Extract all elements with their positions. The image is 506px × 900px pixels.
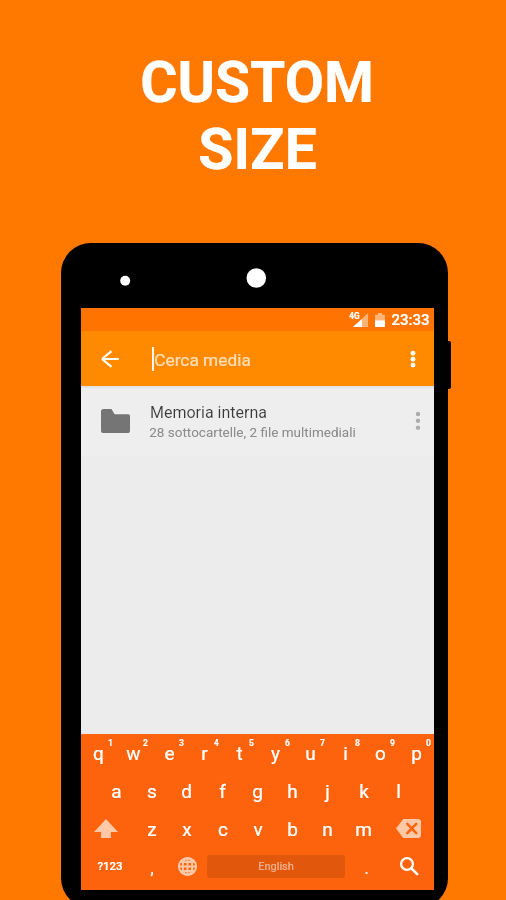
- button[interactable]: 0: [399, 734, 434, 774]
- staticText: c: [218, 818, 228, 840]
- staticText: d: [181, 780, 192, 802]
- button[interactable]: Change language: [169, 850, 204, 890]
- button[interactable]: Backspace: [381, 812, 434, 850]
- staticText: 5: [249, 738, 254, 748]
- staticText: l: [396, 780, 401, 802]
- staticText: 6: [285, 738, 290, 748]
- button[interactable]: g: [240, 774, 275, 812]
- button[interactable]: z: [134, 812, 169, 850]
- staticText: n: [322, 818, 333, 840]
- button[interactable]: 3: [152, 734, 187, 774]
- staticText: g: [252, 780, 263, 802]
- button[interactable]: d: [169, 774, 204, 812]
- button[interactable]: Shift: [81, 812, 134, 850]
- staticText: 0: [426, 738, 431, 748]
- staticText: 8: [355, 738, 360, 748]
- button[interactable]: b: [275, 812, 310, 850]
- button[interactable]: x: [169, 812, 204, 850]
- staticText: z: [147, 818, 157, 840]
- staticText: r: [201, 742, 208, 764]
- button[interactable]: 9: [363, 734, 398, 774]
- staticText: p: [411, 742, 422, 764]
- staticText: w: [126, 742, 141, 764]
- staticText: SIZE: [198, 116, 317, 183]
- button[interactable]: English: [207, 855, 345, 878]
- button[interactable]: m: [346, 812, 381, 850]
- staticText: Memoria interna: [150, 403, 267, 422]
- staticText: 3: [179, 738, 184, 748]
- button[interactable]: Memoria interna: [81, 386, 434, 456]
- staticText: 2: [143, 738, 148, 748]
- button[interactable]: 1: [81, 734, 116, 774]
- button[interactable]: v: [240, 812, 275, 850]
- button[interactable]: h: [275, 774, 310, 812]
- staticText: u: [305, 742, 316, 764]
- staticText: x: [182, 818, 192, 840]
- staticText: f: [219, 780, 226, 802]
- staticText: 23:33: [391, 311, 430, 329]
- button[interactable]: 5: [222, 734, 257, 774]
- button[interactable]: .: [347, 850, 382, 890]
- staticText: s: [147, 780, 157, 802]
- staticText: 1: [108, 738, 113, 748]
- staticText: v: [253, 818, 263, 840]
- button[interactable]: c: [205, 812, 240, 850]
- staticText: q: [93, 742, 104, 764]
- staticText: 9: [390, 738, 395, 748]
- button[interactable]: ,: [134, 850, 169, 890]
- button[interactable]: 8: [328, 734, 363, 774]
- staticText: CUSTOM: [140, 49, 374, 116]
- staticText: y: [271, 742, 280, 764]
- staticText: b: [287, 818, 298, 840]
- staticText: k: [359, 780, 369, 802]
- staticText: a: [111, 780, 122, 802]
- staticText: 4G: [349, 311, 360, 321]
- button[interactable]: Item options: [400, 403, 436, 439]
- button[interactable]: j: [310, 774, 345, 812]
- staticText: 7: [320, 738, 325, 748]
- button[interactable]: 2: [116, 734, 151, 774]
- button[interactable]: Back: [91, 340, 129, 378]
- staticText: i: [343, 742, 348, 764]
- staticText: m: [355, 818, 372, 840]
- staticText: ?123: [97, 859, 123, 872]
- staticText: t: [236, 742, 243, 764]
- staticText: English: [258, 860, 294, 873]
- staticText: o: [375, 742, 386, 764]
- button[interactable]: 7: [293, 734, 328, 774]
- staticText: e: [164, 742, 175, 764]
- staticText: 4: [214, 738, 219, 748]
- button[interactable]: a: [99, 774, 134, 812]
- staticText: h: [287, 780, 298, 802]
- button[interactable]: ?123: [81, 850, 134, 890]
- staticText: 28 sottocartelle, 2 file multimediali: [149, 424, 356, 440]
- staticText: Cerca media: [154, 350, 251, 370]
- button[interactable]: l: [381, 774, 416, 812]
- button[interactable]: s: [134, 774, 169, 812]
- button[interactable]: 6: [258, 734, 293, 774]
- staticText: j: [325, 780, 330, 802]
- staticText: .: [364, 859, 369, 878]
- button[interactable]: f: [205, 774, 240, 812]
- button[interactable]: 4: [187, 734, 222, 774]
- button[interactable]: More options: [394, 340, 432, 378]
- button[interactable]: Search: [381, 850, 434, 890]
- button[interactable]: n: [310, 812, 345, 850]
- staticText: ,: [150, 859, 154, 878]
- button[interactable]: k: [346, 774, 381, 812]
